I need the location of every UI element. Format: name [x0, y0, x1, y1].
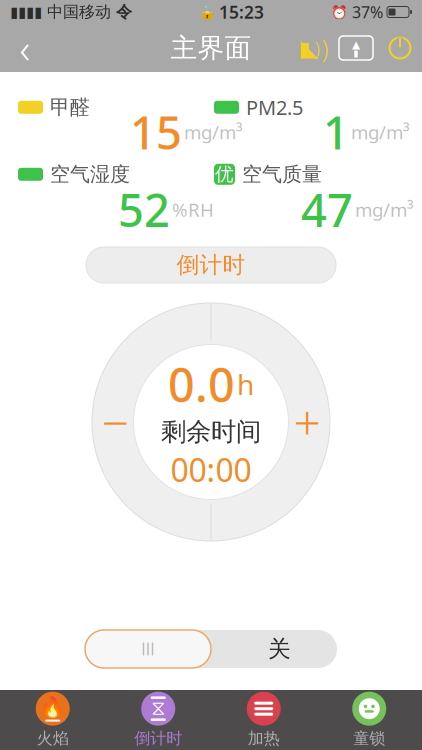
button[interactable]: 倒计时	[86, 247, 336, 283]
button[interactable]: Decrease time	[93, 400, 137, 444]
button[interactable]: 加热	[211, 690, 316, 750]
button[interactable]: Power toggle, off	[85, 630, 337, 668]
staticText: 空气质量	[242, 162, 322, 187]
staticText: ◣	[300, 35, 317, 61]
staticText: +	[293, 390, 320, 454]
staticText: 37%	[352, 1, 383, 23]
button[interactable]: Back	[0, 24, 50, 72]
staticText: ⧖	[151, 699, 165, 718]
staticText: mg/m³	[355, 197, 414, 222]
staticText: 🔒	[199, 4, 216, 20]
staticText: ‹	[19, 21, 30, 74]
staticText: 1	[323, 102, 349, 162]
staticText: 中国移动	[47, 2, 111, 22]
staticText: 52	[118, 179, 170, 240]
button[interactable]: 童锁	[316, 690, 422, 750]
staticText: h	[237, 366, 254, 403]
staticText: )	[314, 35, 320, 61]
staticText: 15:23	[219, 0, 264, 23]
staticText: 加热	[248, 729, 280, 748]
staticText: 47	[301, 179, 353, 240]
staticText: 倒计时	[134, 729, 182, 748]
staticText: 甲醛	[50, 95, 90, 120]
staticText: 倒计时	[176, 251, 245, 279]
staticText: 童锁	[353, 729, 385, 748]
staticText: ⏰	[331, 4, 348, 20]
staticText: 关	[268, 635, 291, 663]
staticText: 空气湿度	[50, 162, 130, 187]
button[interactable]: Sound	[292, 24, 334, 72]
button[interactable]: Increase time	[285, 400, 329, 444]
staticText: 00:00	[170, 448, 251, 491]
staticText: 主界面	[170, 32, 251, 64]
staticText: ▲	[352, 38, 360, 50]
staticText: 优	[215, 163, 234, 186]
button[interactable]: ⧖	[105, 690, 211, 750]
staticText: 0.0	[168, 353, 235, 415]
button[interactable]: Upload	[334, 24, 378, 72]
staticText: PM2.5	[246, 94, 303, 121]
button[interactable]: 🔥	[0, 690, 105, 750]
staticText: 火焰	[37, 729, 69, 748]
staticText: 令	[116, 2, 132, 22]
staticText: %RH	[172, 197, 214, 222]
staticText: )	[321, 31, 328, 65]
staticText: 剩余时间	[161, 416, 261, 447]
staticText: 🔥	[40, 696, 65, 719]
staticText: −	[101, 390, 128, 454]
staticText: 15	[130, 102, 182, 162]
button[interactable]: Power	[378, 24, 422, 72]
staticText: ▮▮▮▮	[10, 4, 42, 20]
staticText: mg/m³	[351, 120, 410, 144]
staticText: mg/m³	[184, 120, 243, 144]
